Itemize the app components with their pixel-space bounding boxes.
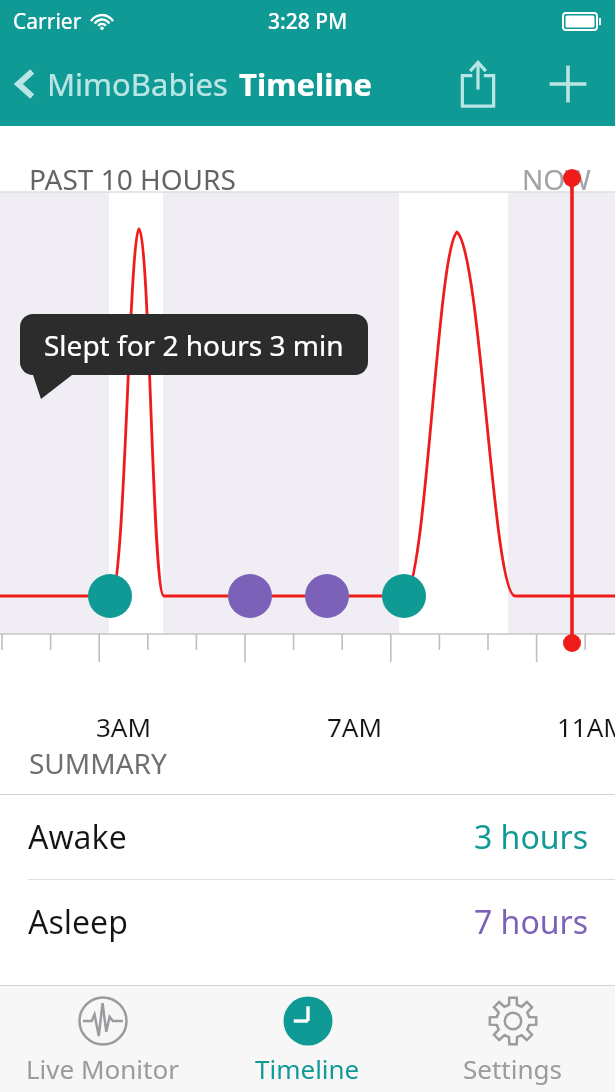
- button[interactable]: Awake: [0, 795, 615, 879]
- staticText: 3:28 PM: [268, 7, 348, 36]
- staticText: 3AM: [96, 709, 152, 744]
- staticText: Asleep: [28, 900, 128, 944]
- staticText: Settings: [463, 1051, 562, 1086]
- button[interactable]: Add: [540, 56, 596, 112]
- button[interactable]: Share: [450, 56, 506, 112]
- staticText: Timeline: [255, 1051, 360, 1086]
- staticText: MimoBabies: [47, 63, 228, 105]
- staticText: Live Monitor: [26, 1051, 179, 1086]
- button[interactable]: Settings: [410, 986, 615, 1086]
- staticText: Awake: [28, 815, 127, 859]
- staticText: Slept for 2 hours 3 min: [44, 326, 344, 364]
- staticText: Carrier: [13, 7, 82, 36]
- staticText: 7AM: [327, 709, 383, 744]
- staticText: 3 hours: [474, 815, 589, 859]
- button[interactable]: Timeline: [205, 986, 410, 1086]
- staticText: NOW: [522, 160, 591, 198]
- staticText: 11AM: [557, 709, 615, 744]
- staticText: SUMMARY: [29, 744, 167, 782]
- staticText: 7 hours: [474, 900, 589, 944]
- button[interactable]: Live Monitor: [0, 986, 205, 1086]
- staticText: PAST 10 HOURS: [29, 160, 236, 198]
- staticText: Timeline: [239, 63, 373, 105]
- button[interactable]: Asleep: [0, 880, 615, 964]
- button[interactable]: MimoBabies: [0, 53, 381, 115]
